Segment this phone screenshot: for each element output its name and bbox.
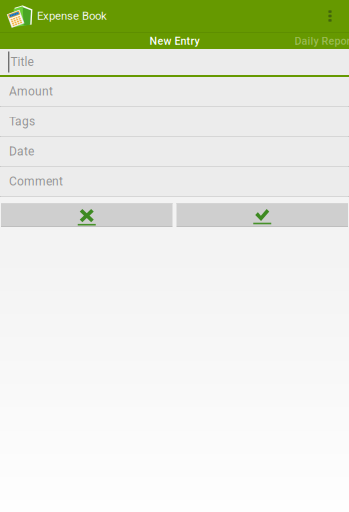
staticText: Comment [9,174,63,189]
button[interactable]: Daily Report [249,33,349,49]
staticText: New Entry [149,35,199,47]
staticText: Expense Book [37,9,107,23]
button[interactable]: Cancel [1,203,172,227]
button[interactable]: More options [319,0,341,32]
button[interactable]: Save [176,203,348,227]
staticText: Title [10,55,33,69]
staticText: Amount [9,84,53,99]
staticText: Daily Report [294,35,349,47]
button[interactable]: New Entry [99,33,249,49]
staticText: Date [9,144,34,159]
staticText: Tags [9,114,35,129]
